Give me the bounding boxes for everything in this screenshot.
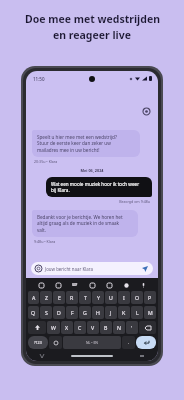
button[interactable]: H xyxy=(92,306,104,319)
button[interactable]: X xyxy=(61,321,73,334)
button[interactable]: S xyxy=(40,306,52,319)
staticText: GIF xyxy=(72,283,78,287)
staticText: L xyxy=(136,309,139,316)
staticText: R xyxy=(70,294,74,301)
staticText: NL • EN xyxy=(86,340,98,345)
staticText: 9:48u • Klara xyxy=(34,239,56,244)
button[interactable]: Toolbar 2 xyxy=(71,281,79,289)
staticText: E xyxy=(58,294,61,301)
button[interactable]: D xyxy=(53,306,65,319)
staticText: G xyxy=(83,309,87,316)
button[interactable]: Toolbar 5 xyxy=(122,281,130,289)
button[interactable]: O xyxy=(131,291,143,304)
staticText: U xyxy=(109,294,113,301)
staticText: I xyxy=(123,294,125,301)
button[interactable]: Backspace xyxy=(139,321,156,334)
button[interactable]: K xyxy=(118,306,130,319)
button[interactable]: NL • EN xyxy=(63,336,121,349)
button[interactable]: V xyxy=(87,321,99,334)
button[interactable]: Wat een mooie muziek hoor ik toch weer b… xyxy=(46,177,152,197)
button[interactable]: Q xyxy=(28,306,39,319)
button[interactable]: I xyxy=(118,291,130,304)
staticText: C xyxy=(78,324,82,331)
staticText: Mei 06, 2024 xyxy=(32,168,152,173)
button[interactable]: Y xyxy=(92,291,104,304)
staticText: 20:35u • Klara xyxy=(34,159,58,164)
staticText: K xyxy=(122,309,126,316)
button[interactable]: P xyxy=(144,291,156,304)
button[interactable]: Bedankt voor je berichtje. We horen het … xyxy=(32,210,138,237)
staticText: ?123 xyxy=(34,340,42,345)
staticText: B xyxy=(104,324,108,331)
button[interactable]: T xyxy=(79,291,91,304)
button[interactable]: W xyxy=(47,321,60,334)
staticText: Bedankt voor je berichtje. We horen het … xyxy=(37,214,123,233)
staticText: Jouw bericht naar Klara xyxy=(45,266,141,272)
button[interactable]: G xyxy=(79,306,91,319)
staticText: P xyxy=(148,294,152,301)
staticText: O xyxy=(135,294,140,301)
button[interactable]: N xyxy=(113,321,125,334)
button[interactable]: Toolbar 0 xyxy=(37,281,45,289)
staticText: Wat een mooie muziek hoor ik toch weer b… xyxy=(51,181,140,193)
button[interactable]: M xyxy=(144,306,156,319)
staticText: 11:50 xyxy=(33,76,45,82)
staticText: H xyxy=(96,309,100,316)
staticText: F xyxy=(71,309,74,316)
button[interactable]: E xyxy=(53,291,65,304)
button[interactable]: Toolbar 6 xyxy=(139,281,147,289)
button[interactable]: Enter xyxy=(136,336,156,349)
staticText: ' xyxy=(131,324,133,331)
button[interactable]: Toolbar 1 xyxy=(54,281,62,289)
button[interactable]: B xyxy=(100,321,112,334)
button[interactable]: C xyxy=(74,321,86,334)
button[interactable]: Speelt u hier mee met een wedstrijd? Stu… xyxy=(32,130,140,157)
button[interactable]: ' xyxy=(126,321,138,334)
button[interactable]: J xyxy=(105,306,117,319)
button[interactable]: ?123 xyxy=(28,336,48,349)
staticText: N xyxy=(117,324,121,331)
button[interactable]: Verstuur xyxy=(141,265,149,273)
staticText: Speelt u hier mee met een wedstrijd? Stu… xyxy=(37,134,117,153)
staticText: X xyxy=(65,324,69,331)
button[interactable]: Instellingen xyxy=(141,106,151,116)
staticText: W xyxy=(51,324,56,331)
button[interactable]: R xyxy=(66,291,78,304)
button[interactable]: . xyxy=(122,336,135,349)
button[interactable]: A xyxy=(28,291,39,304)
staticText: M xyxy=(148,309,153,316)
staticText: V xyxy=(91,324,95,331)
staticText: S xyxy=(45,309,48,316)
button[interactable]: Jouw bericht naar Klara xyxy=(31,262,153,275)
staticText: Q xyxy=(31,309,36,316)
staticText: A xyxy=(32,294,36,301)
staticText: . xyxy=(128,340,130,345)
staticText: T xyxy=(84,294,87,301)
staticText: D xyxy=(57,309,61,316)
button[interactable]: Emoji xyxy=(49,336,62,349)
button[interactable]: Z xyxy=(40,291,52,304)
button[interactable]: F xyxy=(66,306,78,319)
staticText: en reageer live xyxy=(53,28,131,42)
button[interactable]: L xyxy=(131,306,143,319)
button[interactable]: Toolbar 4 xyxy=(105,281,113,289)
staticText: Doe mee met wedstrijden xyxy=(25,12,160,26)
button[interactable]: Toolbar 3 xyxy=(88,281,96,289)
staticText: J xyxy=(110,309,112,316)
staticText: Y xyxy=(97,294,100,301)
staticText: Z xyxy=(45,294,48,301)
button[interactable]: U xyxy=(105,291,117,304)
staticText: Bezorgd om 9:48u xyxy=(32,199,150,204)
button[interactable]: Shift xyxy=(28,321,46,334)
